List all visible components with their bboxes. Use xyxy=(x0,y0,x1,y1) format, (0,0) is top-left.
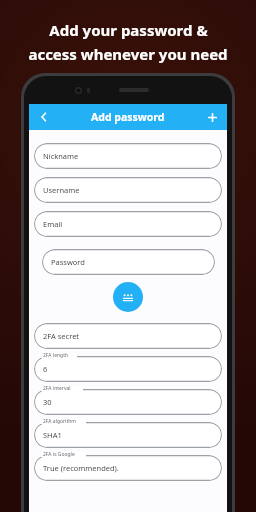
staticText: Add your password & xyxy=(49,20,208,40)
button[interactable]: Nickname xyxy=(34,143,222,169)
staticText: Username xyxy=(43,185,80,195)
staticText: Password xyxy=(51,257,85,267)
staticText: 30 xyxy=(43,397,52,407)
staticText: SHA1 xyxy=(43,430,62,440)
staticText: Nickname xyxy=(43,151,79,161)
button[interactable]: Password xyxy=(42,249,215,275)
button[interactable]: Back xyxy=(29,104,59,130)
staticText: 2FA length xyxy=(43,352,69,359)
staticText: 2FA is Google xyxy=(43,451,75,458)
button[interactable]: Generate password xyxy=(113,282,143,312)
staticText: 2FA interval xyxy=(43,385,71,392)
button[interactable]: 30 xyxy=(34,389,222,415)
staticText: access whenever you need xyxy=(28,44,228,64)
staticText: 6 xyxy=(43,364,48,374)
button[interactable]: Email xyxy=(34,211,222,237)
button[interactable]: True (recommended). xyxy=(34,455,222,481)
staticText: Add password xyxy=(91,110,165,124)
staticText: 2FA algorithm xyxy=(43,418,76,425)
staticText: Email xyxy=(43,219,63,229)
staticText: True (recommended). xyxy=(43,463,119,473)
button[interactable]: 2FA secret xyxy=(34,323,222,349)
button[interactable]: Username xyxy=(34,177,222,203)
staticText: 2FA secret xyxy=(43,331,80,341)
button[interactable]: 6 xyxy=(34,356,222,382)
button[interactable]: SHA1 xyxy=(34,422,222,448)
button[interactable]: Add xyxy=(197,104,227,130)
